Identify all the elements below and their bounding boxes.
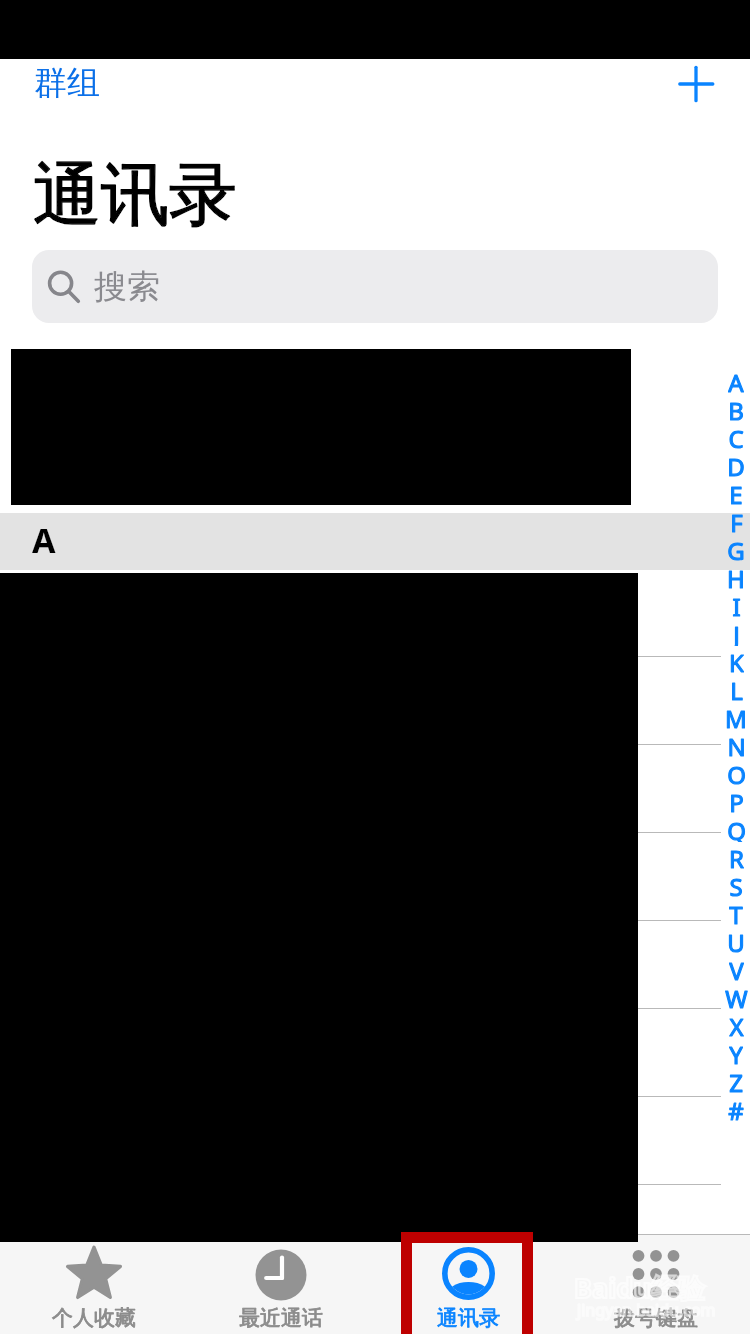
button[interactable]: C xyxy=(723,422,749,450)
staticText: F xyxy=(730,506,743,534)
button[interactable]: S xyxy=(723,870,749,898)
button[interactable]: D xyxy=(723,450,749,478)
button[interactable]: H xyxy=(723,562,749,590)
button[interactable]: L xyxy=(723,674,749,702)
staticText: J xyxy=(733,618,740,646)
staticText: W xyxy=(725,982,748,1010)
staticText: # xyxy=(728,1094,744,1122)
staticText: T xyxy=(729,898,743,926)
staticText: X xyxy=(729,1010,744,1038)
staticText: 通讯录 xyxy=(437,1305,500,1331)
staticText: Baidu经验 xyxy=(574,1269,705,1306)
staticText: I xyxy=(732,590,741,618)
staticText: H xyxy=(727,562,745,590)
button[interactable]: B xyxy=(723,394,749,422)
staticText: 拨号键盘 xyxy=(614,1305,698,1331)
staticText: K xyxy=(729,646,744,674)
button[interactable]: V xyxy=(723,954,749,982)
staticText: E xyxy=(729,478,743,506)
staticText: C xyxy=(728,422,744,450)
staticText: Q xyxy=(727,814,746,842)
staticText: P xyxy=(729,786,744,814)
button[interactable]: 搜索 xyxy=(32,250,718,323)
staticText: H xyxy=(727,562,745,590)
button[interactable]: Y xyxy=(723,1038,749,1066)
button[interactable]: A xyxy=(723,366,749,394)
button[interactable]: G xyxy=(723,534,749,562)
staticText: Z xyxy=(729,1066,743,1094)
staticText: A xyxy=(728,366,744,394)
button[interactable]: T xyxy=(723,898,749,926)
button[interactable]: 通讯录 xyxy=(374,1235,562,1334)
button[interactable]: O xyxy=(723,758,749,786)
staticText: 群组 xyxy=(34,62,100,104)
button[interactable]: P xyxy=(723,786,749,814)
staticText: N xyxy=(727,730,746,758)
staticText: U xyxy=(727,926,745,954)
button[interactable]: Add contact xyxy=(666,54,726,114)
staticText: R xyxy=(729,842,744,870)
staticText: 搜索 xyxy=(94,266,160,308)
staticText: B xyxy=(728,394,744,422)
staticText: M xyxy=(725,702,747,730)
staticText: # xyxy=(728,1094,744,1122)
staticText: 拨号键盘 xyxy=(614,1305,698,1331)
staticText: 通讯录 xyxy=(437,1305,500,1331)
staticText: O xyxy=(727,758,746,786)
button[interactable]: 最近通话 xyxy=(187,1235,374,1334)
staticText: U xyxy=(727,926,745,954)
staticText: F xyxy=(730,506,743,534)
staticText: G xyxy=(727,534,745,562)
button[interactable]: J xyxy=(723,618,749,646)
staticText: A xyxy=(32,517,56,563)
button[interactable]: F xyxy=(723,506,749,534)
staticText: R xyxy=(729,842,744,870)
staticText: Y xyxy=(729,1038,743,1066)
button[interactable]: 拨号键盘 xyxy=(562,1235,750,1334)
staticText: 个人收藏 xyxy=(52,1305,136,1331)
button[interactable]: Z xyxy=(723,1066,749,1094)
staticText: N xyxy=(727,730,746,758)
staticText: W xyxy=(725,982,748,1010)
staticText: Y xyxy=(729,1038,743,1066)
staticText: D xyxy=(727,450,745,478)
button[interactable]: W xyxy=(723,982,749,1010)
staticText: K xyxy=(729,646,744,674)
staticText: A xyxy=(728,366,744,394)
staticText: X xyxy=(729,1010,744,1038)
staticText: L xyxy=(730,674,743,702)
button[interactable]: N xyxy=(723,730,749,758)
button[interactable]: 个人收藏 xyxy=(0,1235,187,1334)
staticText: jingyan.baidu.com xyxy=(577,1299,716,1321)
staticText: M xyxy=(725,702,747,730)
button[interactable]: X xyxy=(723,1010,749,1038)
button[interactable]: # xyxy=(723,1094,749,1122)
staticText: S xyxy=(729,870,743,898)
staticText: P xyxy=(729,786,744,814)
button[interactable]: 群组 xyxy=(22,55,112,111)
staticText: 通讯录 xyxy=(33,153,237,239)
button[interactable]: Q xyxy=(723,814,749,842)
staticText: Z xyxy=(729,1066,743,1094)
staticText: 通讯录 xyxy=(33,153,237,239)
staticText: S xyxy=(729,870,743,898)
staticText: L xyxy=(730,674,743,702)
staticText: I xyxy=(732,590,741,618)
staticText: O xyxy=(727,758,746,786)
staticText: D xyxy=(727,450,745,478)
staticText: T xyxy=(729,898,743,926)
button[interactable]: M xyxy=(723,702,749,730)
staticText: 最近通话 xyxy=(239,1305,323,1331)
button[interactable]: I xyxy=(723,590,749,618)
button[interactable]: R xyxy=(723,842,749,870)
staticText: E xyxy=(729,478,743,506)
button[interactable]: K xyxy=(723,646,749,674)
staticText: V xyxy=(729,954,744,982)
staticText: B xyxy=(728,394,744,422)
staticText: J xyxy=(733,618,740,646)
staticText: C xyxy=(728,422,744,450)
button[interactable]: E xyxy=(723,478,749,506)
button[interactable]: U xyxy=(723,926,749,954)
staticText: V xyxy=(729,954,744,982)
